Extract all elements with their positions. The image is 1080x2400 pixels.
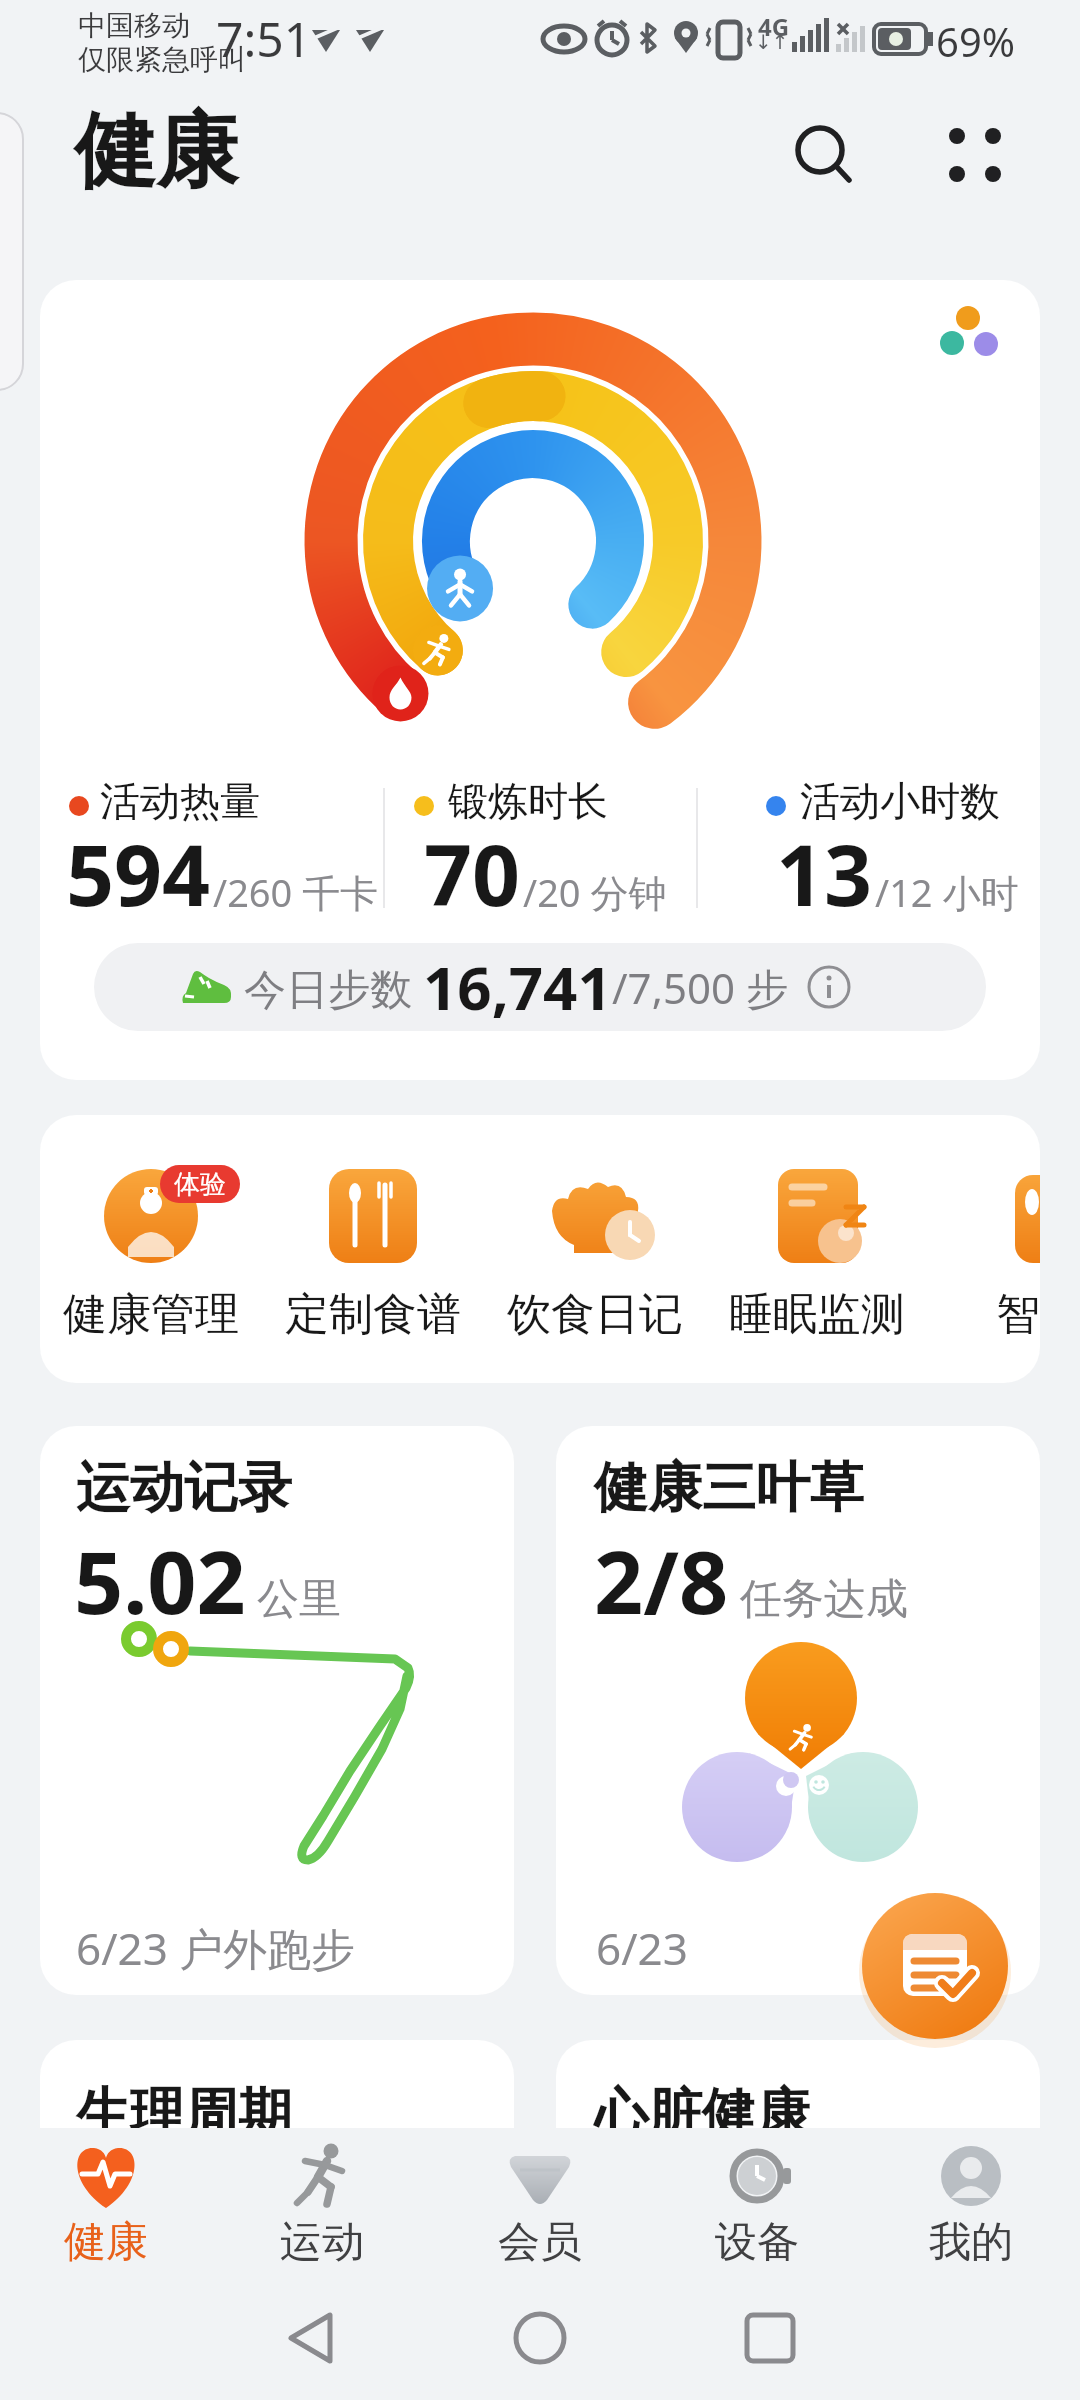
button[interactable]: 运动: [242, 2132, 402, 2272]
staticText: 定制食谱: [285, 1287, 461, 1342]
staticText: 公里: [246, 1568, 341, 1625]
staticText: 任务达成: [729, 1568, 908, 1625]
button[interactable]: 活动热量: [40, 280, 1040, 1080]
button[interactable]: [270, 2300, 350, 2380]
staticText: 69%: [936, 14, 1015, 68]
staticText: 饮食日记: [507, 1287, 683, 1342]
button[interactable]: 健康: [26, 2132, 186, 2272]
staticText: 2/8: [594, 1522, 729, 1639]
button[interactable]: 运动记录: [40, 1426, 514, 1995]
button[interactable]: 今日步数: [94, 943, 986, 1031]
staticText: 会员: [498, 2216, 582, 2269]
staticText: 594: [66, 816, 211, 930]
staticText: /7,500 步: [612, 959, 799, 1016]
staticText: 健康: [74, 100, 238, 203]
staticText: 运动: [280, 2216, 364, 2269]
button[interactable]: [283, 1145, 463, 1365]
staticText: 中国移动: [78, 8, 190, 43]
staticText: ↓↑: [755, 30, 789, 53]
staticText: 健康: [64, 2216, 148, 2269]
staticText: 仅限紧急呼叫: [78, 42, 246, 77]
staticText: 4G: [758, 10, 790, 43]
staticText: 睡眠监测: [729, 1287, 905, 1342]
staticText: 设备: [715, 2216, 799, 2269]
staticText: 6/23 户外跑步: [76, 1918, 356, 1978]
button[interactable]: 生理周期: [40, 2040, 514, 2160]
button[interactable]: 会员: [460, 2132, 620, 2272]
staticText: 我的: [929, 2216, 1013, 2269]
staticText: 智能: [996, 1287, 1040, 1342]
button[interactable]: 健康三叶草: [556, 1426, 1040, 1995]
button[interactable]: [727, 1145, 907, 1365]
staticText: 生理周期: [76, 2080, 292, 2148]
staticText: 体验: [174, 1168, 226, 1201]
button[interactable]: 心脏健康: [556, 2040, 1040, 2160]
button[interactable]: [500, 2300, 580, 2380]
button[interactable]: 设备: [677, 2132, 837, 2272]
button[interactable]: [949, 1145, 1040, 1365]
staticText: 健康管理: [63, 1287, 239, 1342]
button[interactable]: [862, 1893, 1008, 2039]
staticText: 运动记录: [76, 1454, 292, 1522]
staticText: 16,741: [423, 946, 612, 1028]
staticText: /12 小时: [875, 866, 1019, 918]
button[interactable]: [930, 110, 1020, 200]
staticText: 6/23: [596, 1918, 688, 1978]
button[interactable]: [730, 2300, 810, 2380]
staticText: 今日步数: [244, 959, 423, 1016]
staticText: 锻炼时长: [448, 776, 608, 826]
staticText: 健康三叶草: [594, 1454, 864, 1522]
staticText: 13: [776, 816, 873, 930]
staticText: 活动热量: [100, 776, 260, 826]
staticText: 7:51: [216, 6, 312, 71]
button[interactable]: 我的: [891, 2132, 1051, 2272]
staticText: 70: [424, 816, 521, 930]
staticText: 心脏健康: [594, 2080, 810, 2148]
button[interactable]: [786, 116, 860, 190]
staticText: /20 分钟: [523, 866, 667, 918]
staticText: 活动小时数: [800, 776, 1000, 826]
staticText: /260 千卡: [213, 866, 379, 918]
button[interactable]: [505, 1145, 685, 1365]
staticText: 5.02: [74, 1522, 246, 1639]
button[interactable]: [61, 1145, 241, 1365]
